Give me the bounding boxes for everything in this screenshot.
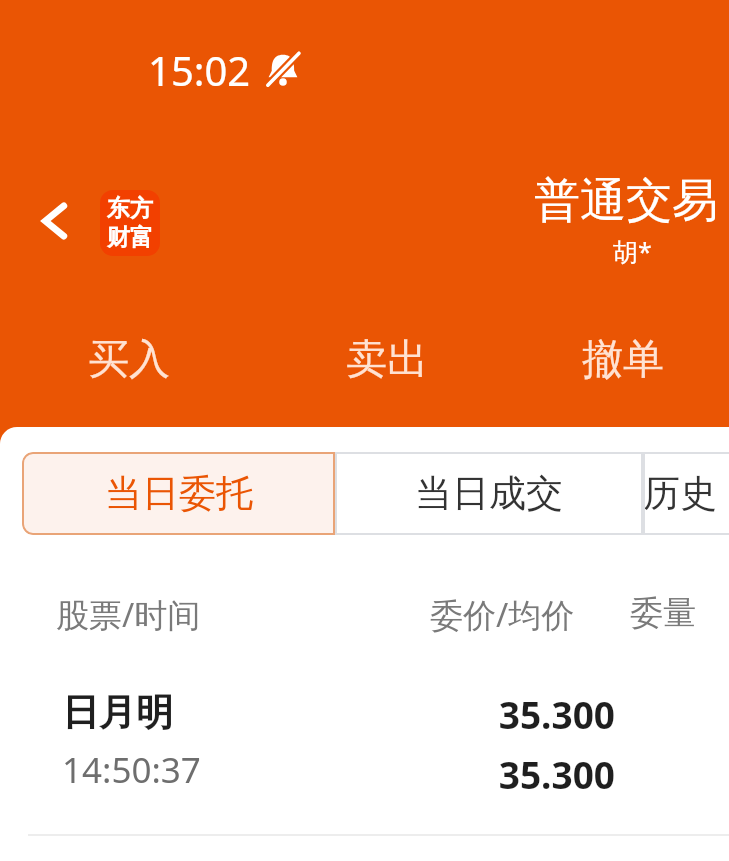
- staticText: 日月明: [62, 689, 173, 736]
- button[interactable]: Back: [22, 188, 88, 254]
- staticText: 股票/时间: [56, 592, 201, 637]
- staticText: 历史委托: [643, 470, 729, 517]
- staticText: 14:50:37: [62, 746, 201, 794]
- staticText: 当日成交: [415, 470, 563, 517]
- staticText: 委量: [630, 592, 696, 634]
- staticText: 普通交易: [534, 172, 718, 230]
- button[interactable]: 当日委托: [22, 452, 335, 535]
- staticText: 东方: [107, 194, 153, 223]
- other: Notifications muted: [263, 50, 303, 90]
- button[interactable]: 历史委托: [643, 452, 729, 535]
- staticText: 35.300: [498, 749, 615, 799]
- button[interactable]: 当日成交: [335, 452, 643, 535]
- button[interactable]: 卖出: [258, 312, 516, 408]
- staticText: 卖出: [346, 334, 428, 386]
- staticText: 15:02: [148, 43, 251, 97]
- staticText: 撤单: [582, 334, 664, 386]
- staticText: 当日委托: [105, 470, 253, 517]
- staticText: 买入: [88, 334, 170, 386]
- button[interactable]: 日月明: [0, 679, 729, 819]
- staticText: 35.300: [498, 689, 615, 739]
- staticText: 财富: [107, 223, 153, 252]
- button[interactable]: 买入: [0, 312, 258, 408]
- staticText: 胡*: [613, 234, 652, 268]
- button[interactable]: 撤单: [516, 312, 729, 408]
- staticText: 委价/均价: [430, 592, 575, 637]
- button[interactable]: 东方财富: [100, 190, 160, 256]
